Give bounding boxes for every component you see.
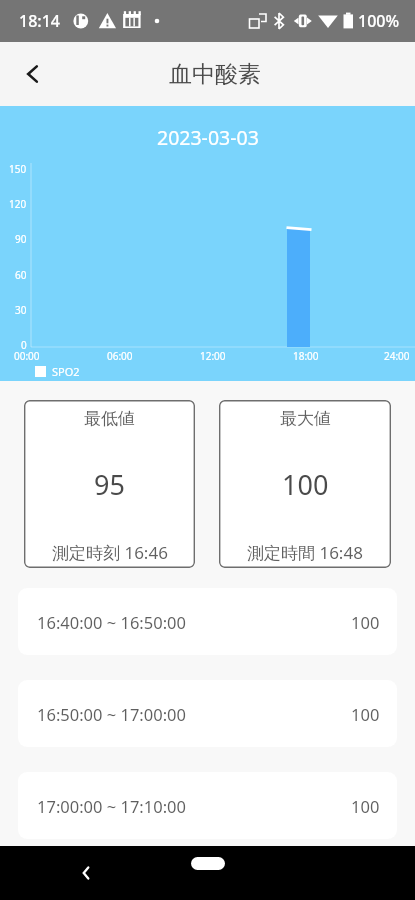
staticText: 100 bbox=[351, 795, 380, 817]
staticText: 17:00:00 ~ 17:10:00 bbox=[37, 795, 186, 817]
staticText: 16:50:00 ~ 17:00:00 bbox=[37, 703, 186, 725]
staticText: 120 bbox=[9, 197, 27, 211]
button[interactable]: 最大値 bbox=[219, 400, 391, 568]
staticText: 06:00 bbox=[107, 349, 133, 363]
staticText: SPO2 bbox=[52, 364, 80, 379]
staticText: 00:00 bbox=[14, 349, 40, 363]
staticText: 150 bbox=[9, 162, 27, 176]
staticText: 95 bbox=[94, 466, 125, 503]
staticText: 17:10:00 ~ 17:20:00 bbox=[37, 871, 186, 893]
staticText: 16:40:00 ~ 16:50:00 bbox=[37, 611, 186, 633]
staticText: 最低値 bbox=[84, 408, 135, 429]
staticText: 0 bbox=[21, 338, 27, 352]
button[interactable]: 16:40:00 ~ 16:50:00 bbox=[18, 588, 397, 655]
staticText: 24:00 bbox=[384, 349, 410, 363]
staticText: 2023-03-03 bbox=[157, 124, 259, 151]
button[interactable]: 17:10:00 ~ 17:20:00 bbox=[18, 864, 397, 900]
button[interactable]: 17:00:00 ~ 17:10:00 bbox=[18, 772, 397, 839]
staticText: 測定時刻 16:46 bbox=[52, 541, 168, 564]
staticText: 最大値 bbox=[280, 408, 331, 429]
button[interactable]: 16:50:00 ~ 17:00:00 bbox=[18, 680, 397, 747]
staticText: 100 bbox=[282, 466, 329, 503]
staticText: 60 bbox=[15, 268, 27, 282]
button[interactable]: Home bbox=[191, 857, 225, 870]
staticText: 100% bbox=[358, 10, 400, 32]
button[interactable]: Back bbox=[12, 54, 52, 94]
staticText: 18:14 bbox=[19, 10, 60, 32]
staticText: 90 bbox=[15, 232, 27, 246]
button[interactable]: 最低値 bbox=[24, 400, 195, 568]
staticText: 100 bbox=[351, 703, 380, 725]
staticText: 血中酸素 bbox=[169, 60, 261, 89]
button[interactable]: Back bbox=[66, 853, 106, 893]
staticText: 18:00 bbox=[293, 349, 319, 363]
staticText: 12:00 bbox=[200, 349, 226, 363]
staticText: 測定時間 16:48 bbox=[247, 541, 363, 564]
staticText: 100 bbox=[351, 611, 380, 633]
staticText: 30 bbox=[15, 303, 27, 317]
